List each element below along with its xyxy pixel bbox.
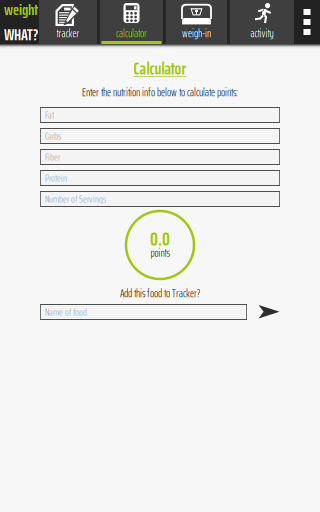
staticText: Number of Servings xyxy=(45,191,106,207)
staticText: weigh-in xyxy=(182,25,211,42)
staticText: Calculator xyxy=(133,55,186,82)
staticText: tracker xyxy=(56,25,79,42)
staticText: Carbs xyxy=(45,128,61,144)
button[interactable]: Number of Servings xyxy=(40,191,280,207)
button[interactable]: More options xyxy=(294,0,320,44)
staticText: Protein xyxy=(45,170,67,186)
button[interactable]: weigh-in xyxy=(166,0,227,44)
button[interactable]: Name of food xyxy=(40,304,247,320)
staticText: WHAT? xyxy=(4,22,38,47)
staticText: activity xyxy=(250,25,273,42)
staticText: 0.0 xyxy=(150,224,170,254)
button[interactable]: activity xyxy=(230,0,294,44)
button[interactable]: calculator xyxy=(100,0,163,44)
button[interactable]: Protein xyxy=(40,170,280,186)
button[interactable]: Add food to tracker xyxy=(258,304,280,320)
staticText: Fat xyxy=(45,107,54,123)
button[interactable]: Fiber xyxy=(40,149,280,165)
staticText: Fiber xyxy=(45,149,60,165)
button[interactable]: Fat xyxy=(40,107,280,123)
staticText: Name of food xyxy=(45,304,87,320)
button[interactable]: Carbs xyxy=(40,128,280,144)
staticText: Enter the nutrition info below to calcul… xyxy=(82,84,238,101)
staticText: weight xyxy=(4,0,38,22)
staticText: calculator xyxy=(116,25,147,42)
button[interactable]: tracker xyxy=(39,0,97,44)
staticText: points xyxy=(150,245,169,261)
button[interactable]: weight WHAT? home xyxy=(0,0,39,44)
staticText: Add this food to Tracker? xyxy=(120,285,200,302)
